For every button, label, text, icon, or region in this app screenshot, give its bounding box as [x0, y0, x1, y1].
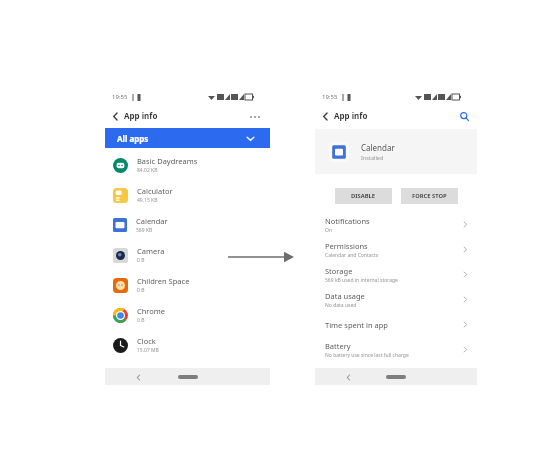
- staticText: 0 B: [137, 257, 145, 264]
- button[interactable]: Back: [343, 372, 353, 382]
- staticText: Basic Daydreams: [137, 156, 198, 166]
- staticText: 569 KB: [136, 227, 153, 234]
- staticText: 15.07 MB: [137, 347, 159, 354]
- button[interactable]: Back: [319, 110, 331, 122]
- staticText: Data usage: [325, 291, 365, 301]
- button[interactable]: Search: [457, 109, 471, 123]
- button[interactable]: Calendar: [315, 129, 477, 174]
- staticText: Storage: [325, 266, 353, 276]
- button[interactable]: Basic Daydreams: [105, 150, 270, 180]
- staticText: FORCE STOP: [412, 192, 447, 200]
- staticText: Calculator: [137, 186, 173, 196]
- staticText: Notifications: [325, 216, 370, 226]
- button[interactable]: Clock: [105, 330, 270, 360]
- staticText: Chrome: [137, 306, 166, 316]
- staticText: 19:55: [112, 93, 128, 101]
- staticText: Time spent in app: [325, 320, 388, 330]
- staticText: Children Space: [137, 276, 190, 286]
- staticText: 0 B: [137, 317, 145, 324]
- button[interactable]: Permissions: [325, 237, 469, 262]
- staticText: Battery: [325, 341, 351, 351]
- button[interactable]: Chrome: [105, 300, 270, 330]
- staticText: Camera: [137, 246, 165, 256]
- staticText: Calendar: [136, 216, 168, 226]
- button[interactable]: Calendar: [105, 210, 270, 240]
- button[interactable]: Calculator: [105, 180, 270, 210]
- button[interactable]: More options: [248, 110, 262, 124]
- button[interactable]: DISABLE: [335, 188, 392, 204]
- staticText: 569 kB used in internal storage: [325, 277, 398, 284]
- button[interactable]: Home: [386, 375, 406, 379]
- staticText: Installed: [361, 154, 384, 161]
- staticText: Permissions: [325, 241, 368, 251]
- button[interactable]: Notifications: [325, 212, 469, 237]
- staticText: App info: [334, 110, 368, 121]
- staticText: 19:55: [322, 93, 338, 101]
- button[interactable]: Back: [133, 372, 143, 382]
- button[interactable]: Home: [178, 375, 198, 379]
- staticText: No data used: [325, 302, 357, 309]
- button[interactable]: Children Space: [105, 270, 270, 300]
- button[interactable]: Data usage: [325, 287, 469, 312]
- staticText: All apps: [117, 133, 149, 144]
- staticText: On: [325, 227, 332, 234]
- staticText: Calendar and Contacts: [325, 252, 379, 259]
- staticText: Calendar: [361, 142, 395, 153]
- button[interactable]: Camera: [105, 240, 270, 270]
- button[interactable]: FORCE STOP: [401, 188, 458, 204]
- button[interactable]: Back: [109, 110, 121, 122]
- staticText: No battery use since last full charge: [325, 352, 409, 359]
- staticText: 49.15 KB: [137, 197, 158, 204]
- button[interactable]: Time spent in app: [325, 312, 469, 337]
- button[interactable]: All apps: [105, 128, 270, 148]
- staticText: Clock: [137, 336, 156, 346]
- button[interactable]: Storage: [325, 262, 469, 287]
- staticText: 0 B: [137, 287, 145, 294]
- button[interactable]: Battery: [325, 337, 469, 362]
- staticText: DISABLE: [351, 192, 376, 200]
- staticText: App info: [124, 110, 158, 121]
- staticText: 84.02 KB: [137, 167, 158, 174]
